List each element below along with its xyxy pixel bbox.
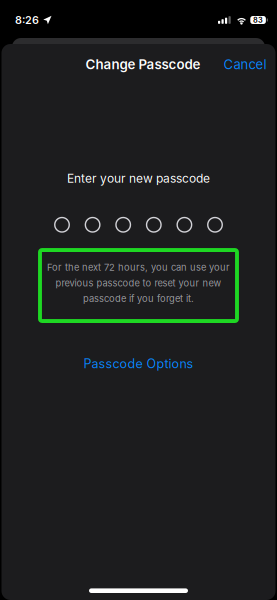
staticText: Change Passcode — [85, 56, 200, 72]
staticText: Cancel — [223, 57, 266, 72]
button[interactable]: Cancel — [214, 49, 275, 80]
button[interactable]: Passcode Options — [71, 349, 205, 378]
staticText: previous passcode to reset your new — [55, 277, 221, 289]
staticText: passcode if you forget it. — [83, 293, 194, 304]
staticText: 83 — [253, 15, 263, 24]
staticText: Passcode Options — [83, 356, 193, 371]
staticText: Enter your new passcode — [67, 171, 210, 185]
staticText: 8:26 — [15, 13, 39, 27]
staticText: For the next 72 hours, you can use your — [47, 262, 230, 273]
